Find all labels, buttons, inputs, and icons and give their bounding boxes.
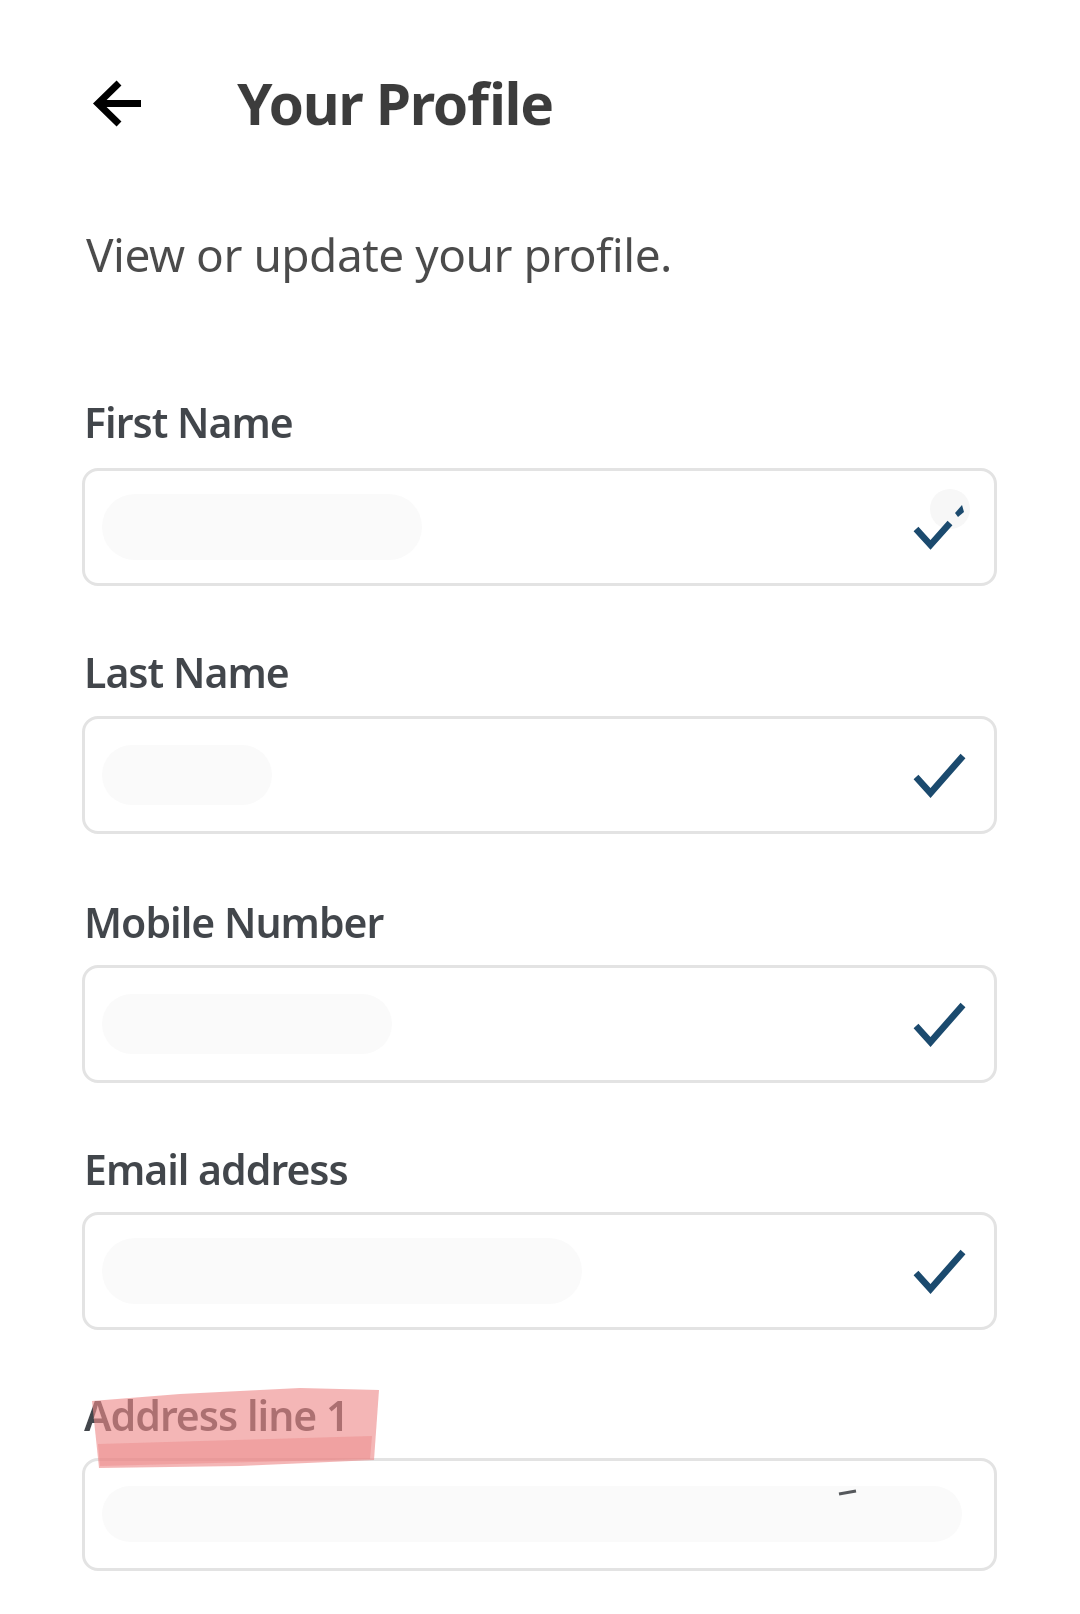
staticText: First Name (84, 394, 293, 450)
staticText: Mobile Number (84, 894, 384, 950)
staticText: Address line 1 (84, 1387, 349, 1443)
staticText: Your Profile (237, 64, 553, 142)
staticText: Email address (84, 1141, 348, 1197)
staticText: View or update your profile. (86, 223, 672, 286)
staticText: Last Name (84, 644, 289, 700)
